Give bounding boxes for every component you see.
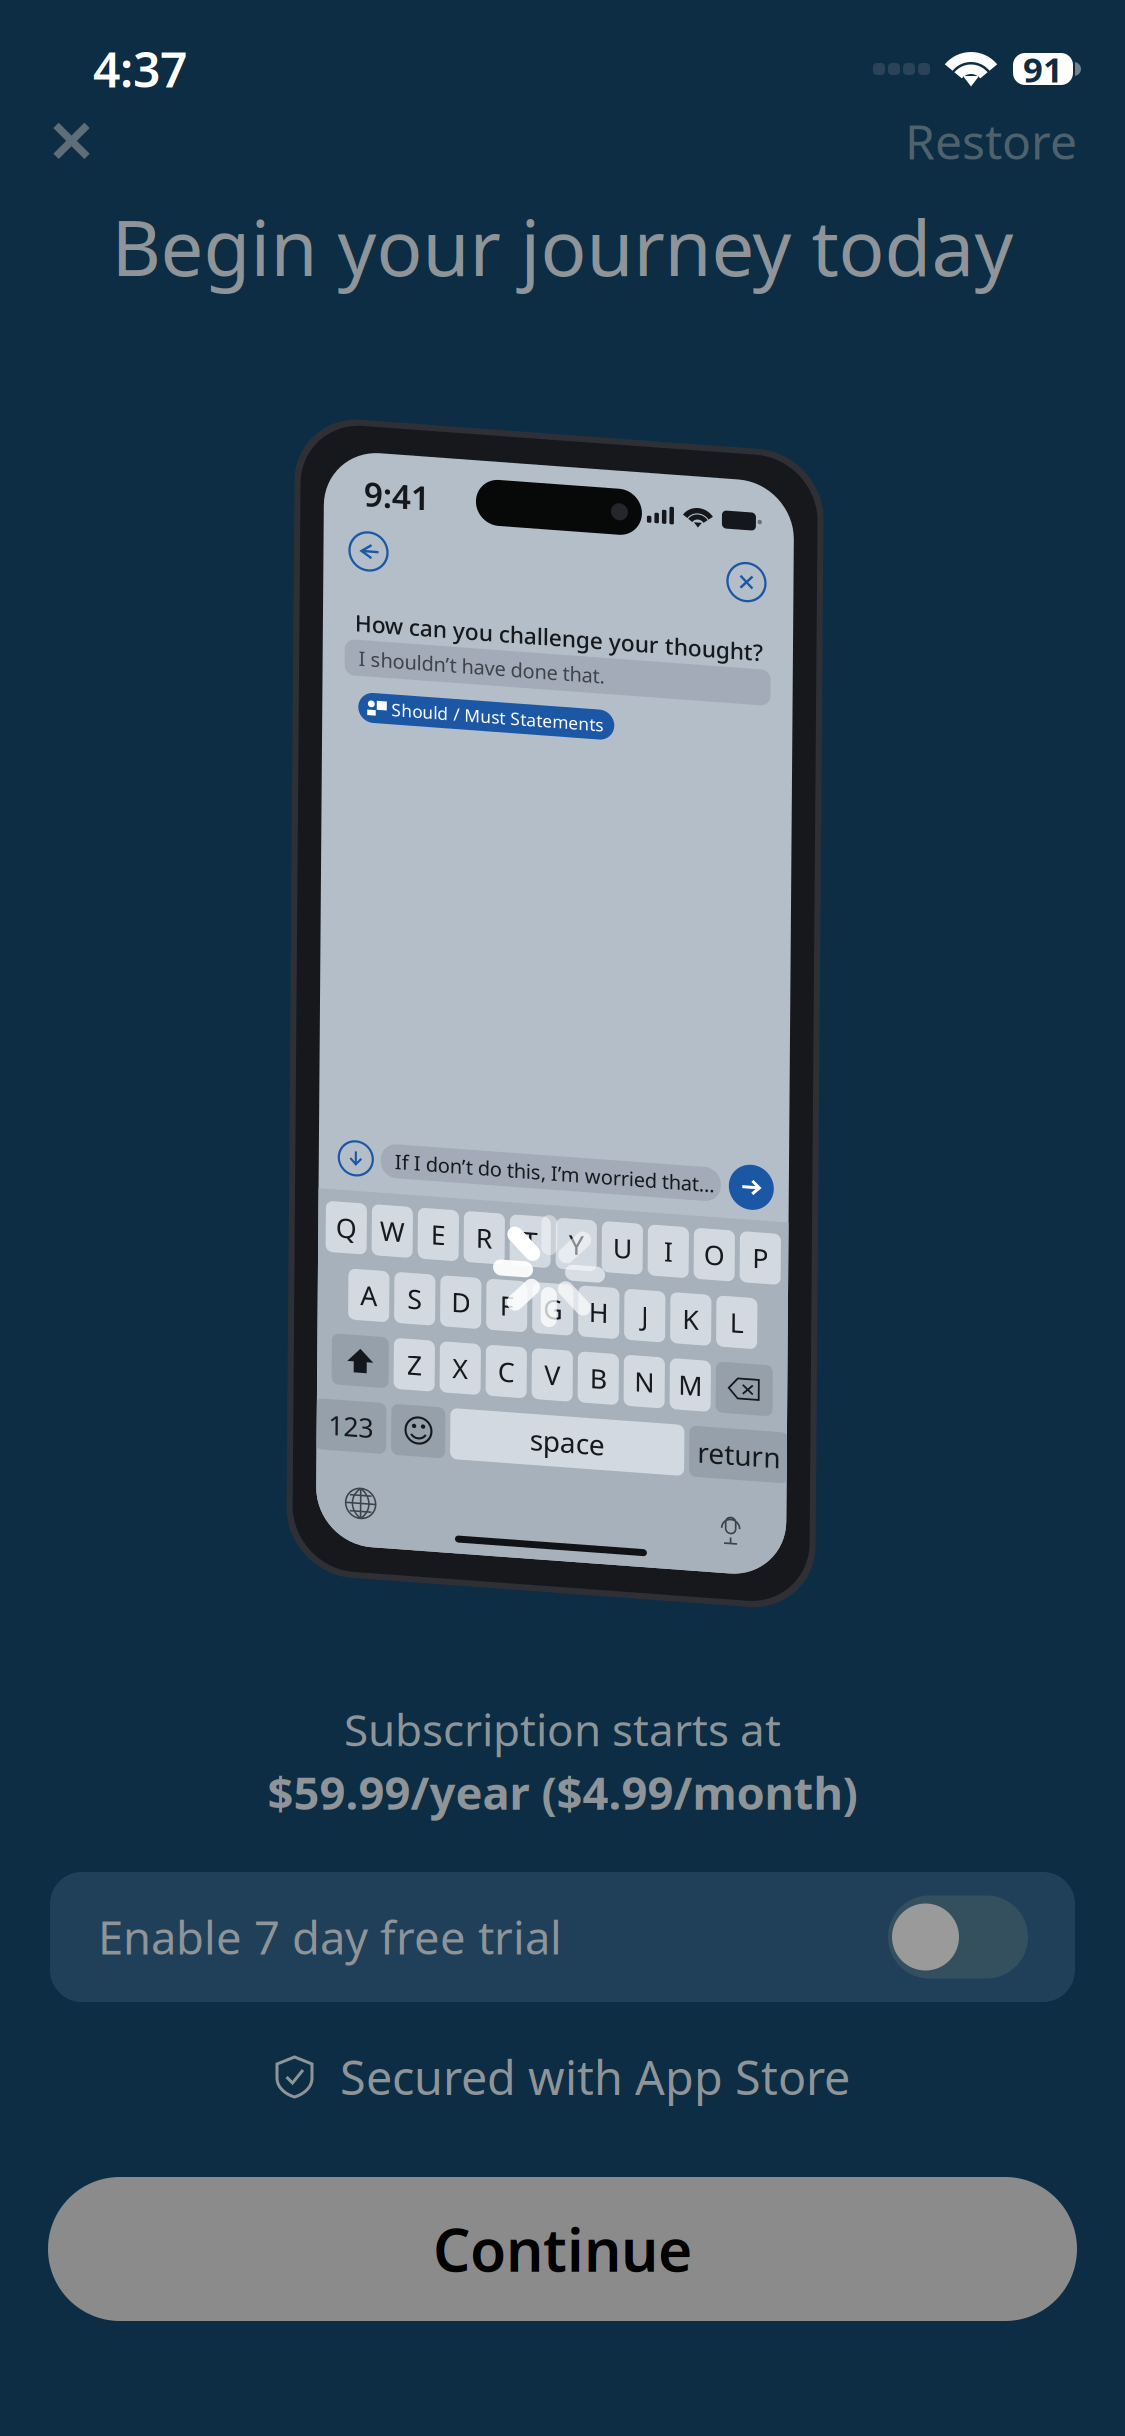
staticText: I xyxy=(670,1206,679,1241)
staticText: Y xyxy=(575,1206,590,1241)
staticText: J xyxy=(648,1272,655,1307)
staticText: R xyxy=(482,1206,499,1241)
staticText: space xyxy=(537,1403,612,1440)
staticText: $59.99/year ($4.99/month) xyxy=(267,1762,857,1822)
staticText: If I don’t do this, I’m worried that… xyxy=(400,1140,720,1167)
staticText: 91 xyxy=(1023,46,1063,92)
staticText: G xyxy=(550,1272,569,1307)
staticText: F xyxy=(506,1272,520,1307)
button[interactable]: Restore xyxy=(905,87,1125,195)
staticText: Continue xyxy=(433,2210,692,2288)
staticText: B xyxy=(597,1338,614,1373)
staticText: X xyxy=(459,1338,475,1373)
staticText: return xyxy=(705,1403,788,1440)
staticText: K xyxy=(689,1272,706,1307)
staticText: How can you challenge your thought? xyxy=(356,603,764,633)
staticText: C xyxy=(505,1338,522,1373)
staticText: M xyxy=(685,1338,709,1373)
staticText: Should / Must Statements xyxy=(393,691,605,714)
staticText: 123 xyxy=(336,1404,381,1439)
staticText: 9:41 xyxy=(364,466,430,510)
staticText: A xyxy=(367,1272,384,1307)
staticText: O xyxy=(710,1206,731,1241)
staticText: H xyxy=(595,1272,615,1307)
staticText: Subscription starts at xyxy=(344,1700,781,1758)
staticText: Z xyxy=(414,1338,429,1373)
staticText: V xyxy=(551,1338,567,1373)
button[interactable]: Enable 7 day free trial xyxy=(50,1872,1075,2002)
staticText: Enable 7 day free trial xyxy=(98,1907,562,1967)
staticText: ☺ xyxy=(409,1403,442,1440)
button[interactable]: Continue xyxy=(48,2177,1077,2321)
staticText: U xyxy=(619,1206,638,1241)
staticText: I shouldn’t have done that. xyxy=(360,640,606,666)
staticText: Q xyxy=(342,1206,363,1241)
staticText: W xyxy=(386,1206,411,1241)
staticText: N xyxy=(641,1338,661,1373)
staticText: T xyxy=(529,1206,544,1241)
staticText: E xyxy=(437,1206,452,1241)
staticText: Secured with App Store xyxy=(340,2046,850,2108)
staticText: L xyxy=(736,1272,750,1307)
staticText: 4:37 xyxy=(93,37,187,101)
staticText: Begin your journey today xyxy=(111,196,1013,297)
staticText: P xyxy=(758,1206,774,1241)
button[interactable]: Close xyxy=(0,99,117,182)
staticText: D xyxy=(458,1272,477,1307)
staticText: Restore xyxy=(905,109,1077,173)
staticText: S xyxy=(414,1272,429,1307)
